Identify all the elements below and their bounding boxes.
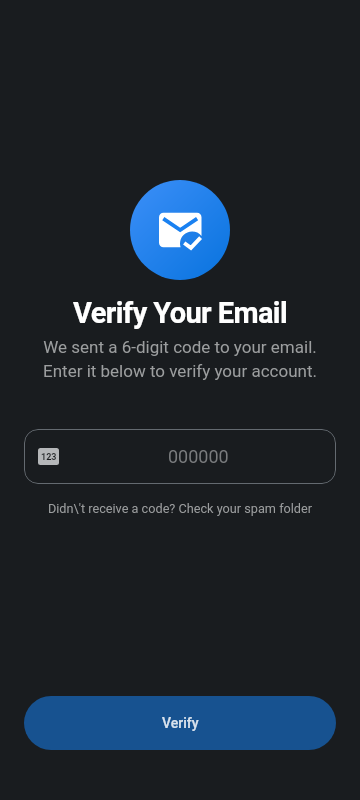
button[interactable]: Verify <box>24 696 336 750</box>
staticText: We sent a 6-digit code to your email. En… <box>0 337 360 381</box>
staticText: 000000 <box>168 446 229 467</box>
other: Numeric keypad <box>38 448 59 465</box>
staticText: 123 <box>41 452 57 463</box>
button[interactable]: Didn\'t receive a code? Check your spam … <box>0 501 360 516</box>
other: Verified email <box>130 180 230 280</box>
staticText: Verify Your Email <box>0 296 360 330</box>
staticText: Didn\'t receive a code? Check your spam … <box>0 501 360 516</box>
button[interactable]: Numeric keypad <box>24 429 336 484</box>
staticText: Verify <box>162 715 199 731</box>
